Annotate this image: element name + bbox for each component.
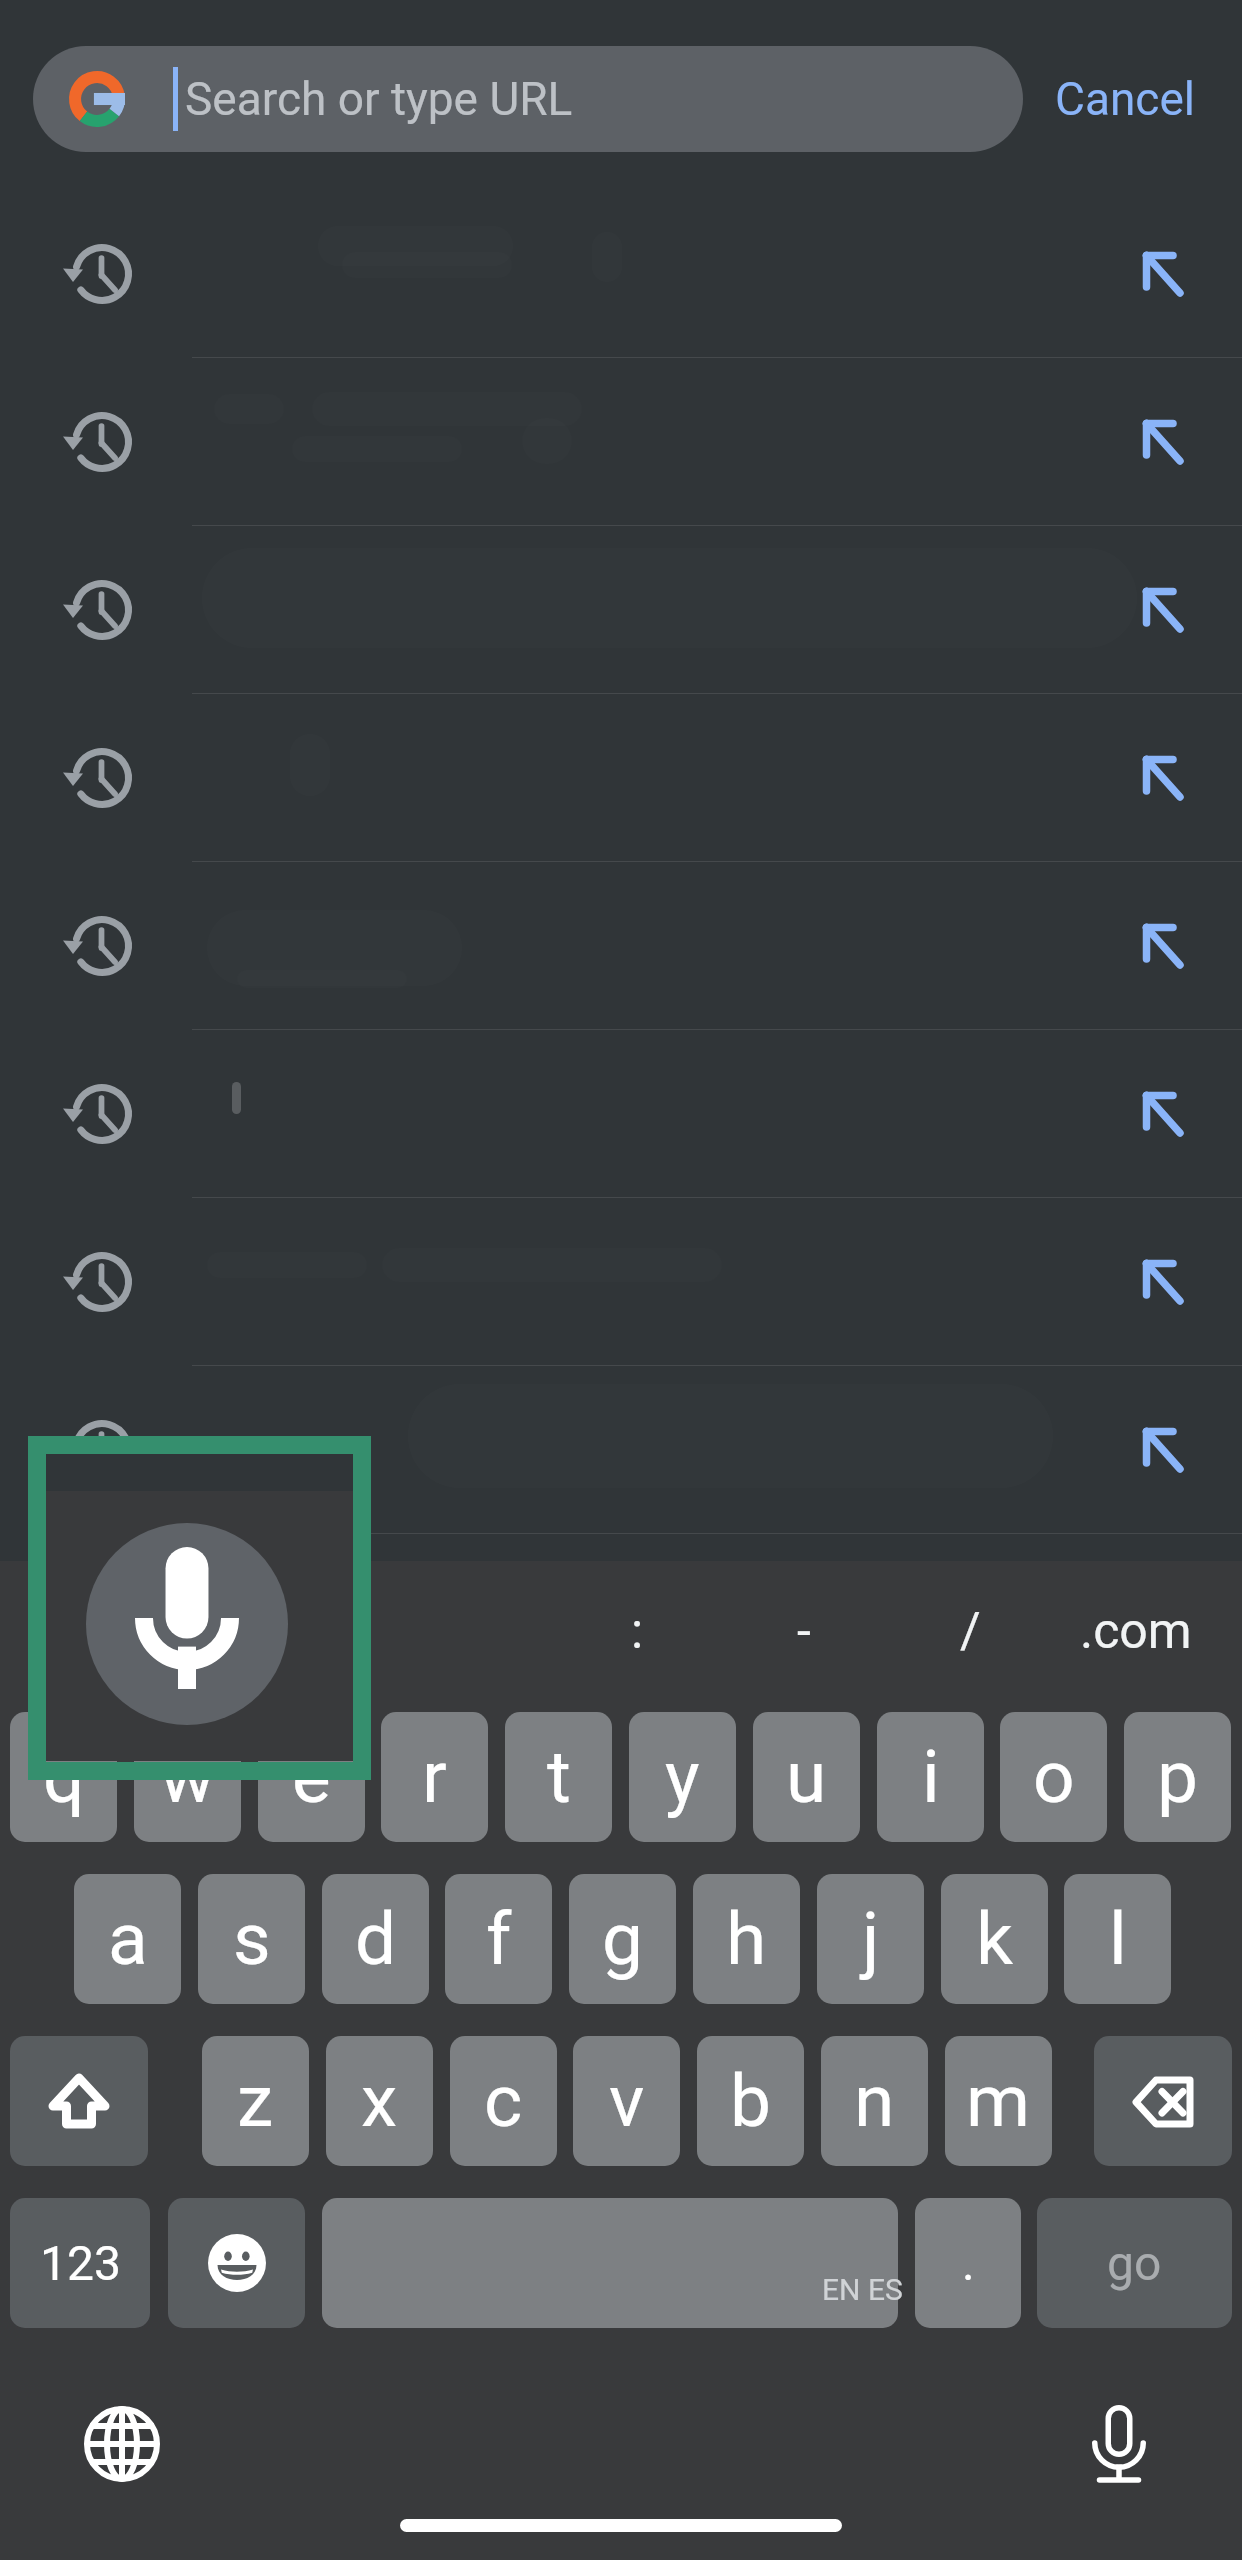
- button[interactable]: .: [915, 2198, 1021, 2328]
- button[interactable]: Insert suggestion: [0, 1030, 1242, 1198]
- staticText: d: [355, 1896, 397, 1982]
- button[interactable]: g: [569, 1874, 676, 2004]
- staticText: a: [108, 1896, 148, 1982]
- staticText: u: [786, 1734, 827, 1820]
- staticText: o: [1033, 1734, 1075, 1820]
- button[interactable]: Insert suggestion: [0, 862, 1242, 1030]
- staticText: go: [1107, 2235, 1162, 2291]
- button[interactable]: Insert suggestion: [0, 190, 1242, 358]
- other: Insert suggestion: [1128, 1247, 1198, 1317]
- button[interactable]: Voice input: [1059, 2384, 1179, 2504]
- button[interactable]: y: [629, 1712, 736, 1842]
- button[interactable]: z: [202, 2036, 309, 2166]
- button[interactable]: Change keyboard language: [62, 2384, 182, 2504]
- button[interactable]: d: [322, 1874, 429, 2004]
- button[interactable]: t: [505, 1712, 612, 1842]
- button[interactable]: go: [1037, 2198, 1232, 2328]
- staticText: EN ES: [822, 2272, 903, 2307]
- button[interactable]: a: [74, 1874, 181, 2004]
- staticText: i: [922, 1734, 940, 1820]
- staticText: c: [484, 2058, 523, 2144]
- button[interactable]: Insert suggestion: [0, 526, 1242, 694]
- staticText: Cancel: [1055, 72, 1196, 126]
- button[interactable]: e: [258, 1712, 365, 1842]
- button[interactable]: i: [877, 1712, 984, 1842]
- button[interactable]: Backspace: [1094, 2036, 1232, 2166]
- staticText: k: [976, 1896, 1013, 1982]
- button[interactable]: Insert suggestion: [0, 694, 1242, 862]
- button[interactable]: .com: [1066, 1561, 1206, 1701]
- button[interactable]: r: [381, 1712, 488, 1842]
- staticText: e: [292, 1734, 331, 1820]
- staticText: z: [237, 2058, 274, 2144]
- button[interactable]: x: [326, 2036, 433, 2166]
- staticText: l: [1109, 1896, 1127, 1982]
- staticText: f: [486, 1896, 512, 1982]
- button[interactable]: Insert suggestion: [0, 1366, 1242, 1534]
- staticText: r: [422, 1734, 447, 1820]
- button[interactable]: w: [134, 1712, 241, 1842]
- staticText: .: [962, 2235, 975, 2291]
- button[interactable]: Shift: [10, 2036, 148, 2166]
- button[interactable]: Voice search: [86, 1523, 288, 1725]
- button[interactable]: m: [945, 2036, 1052, 2166]
- button[interactable]: s: [198, 1874, 305, 2004]
- button[interactable]: p: [1124, 1712, 1231, 1842]
- staticText: .com: [1080, 1602, 1192, 1661]
- button[interactable]: j: [817, 1874, 924, 2004]
- button[interactable]: f: [445, 1874, 552, 2004]
- staticText: v: [609, 2058, 645, 2144]
- staticText: t: [547, 1734, 571, 1820]
- button[interactable]: Search or type URL: [33, 46, 1023, 152]
- button[interactable]: -: [734, 1561, 874, 1701]
- staticText: Search or type URL: [185, 72, 573, 126]
- staticText: :: [631, 1602, 644, 1661]
- staticText: h: [726, 1896, 767, 1982]
- button[interactable]: o: [1000, 1712, 1107, 1842]
- staticText: y: [665, 1734, 700, 1820]
- staticText: g: [602, 1896, 643, 1982]
- button[interactable]: n: [821, 2036, 928, 2166]
- staticText: /: [960, 1602, 981, 1661]
- button[interactable]: Insert suggestion: [0, 1198, 1242, 1366]
- staticText: b: [730, 2058, 771, 2144]
- button[interactable]: u: [753, 1712, 860, 1842]
- other: Insert suggestion: [1128, 911, 1198, 981]
- staticText: x: [361, 2058, 398, 2144]
- button[interactable]: h: [693, 1874, 800, 2004]
- other: Insert suggestion: [1128, 1079, 1198, 1149]
- other: Insert suggestion: [1128, 1415, 1198, 1485]
- button[interactable]: l: [1064, 1874, 1171, 2004]
- button[interactable]: Insert suggestion: [0, 358, 1242, 526]
- button[interactable]: Cancel: [1040, 46, 1210, 152]
- button[interactable]: b: [697, 2036, 804, 2166]
- button[interactable]: :: [567, 1561, 707, 1701]
- other: Insert suggestion: [1128, 239, 1198, 309]
- button[interactable]: q: [10, 1712, 117, 1842]
- staticText: j: [862, 1896, 880, 1982]
- other: Insert suggestion: [1128, 407, 1198, 477]
- staticText: 123: [40, 2235, 121, 2291]
- button[interactable]: 123: [10, 2198, 150, 2328]
- other: Insert suggestion: [1128, 743, 1198, 813]
- button[interactable]: v: [573, 2036, 680, 2166]
- staticText: s: [233, 1896, 271, 1982]
- button[interactable]: [322, 2198, 898, 2328]
- staticText: p: [1157, 1734, 1198, 1820]
- button[interactable]: c: [450, 2036, 557, 2166]
- staticText: m: [966, 2058, 1031, 2144]
- button[interactable]: /: [900, 1561, 1040, 1701]
- staticText: q: [43, 1734, 85, 1820]
- button[interactable]: k: [941, 1874, 1048, 2004]
- staticText: w: [160, 1734, 215, 1820]
- button[interactable]: Emoji: [168, 2198, 305, 2328]
- staticText: n: [854, 2058, 895, 2144]
- other: Insert suggestion: [1128, 575, 1198, 645]
- staticText: -: [797, 1602, 811, 1661]
